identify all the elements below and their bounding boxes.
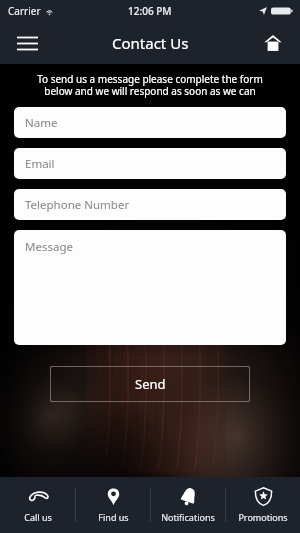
staticText: Notifications [161, 511, 215, 523]
staticText: Call us [24, 511, 52, 523]
staticText: Carrier [8, 4, 41, 18]
staticText: Find us [98, 511, 129, 523]
staticText: Telephone Number [25, 197, 130, 213]
staticText: Promotions [238, 511, 288, 523]
staticText: Message [25, 239, 73, 255]
button[interactable]: Telephone Number [14, 189, 286, 220]
staticText: Name [25, 115, 58, 131]
button[interactable]: Find us [76, 477, 150, 533]
button[interactable]: Home [256, 26, 290, 60]
button[interactable]: Message [14, 230, 286, 345]
button[interactable]: Promotions [226, 477, 300, 533]
button[interactable]: Notifications [151, 477, 225, 533]
staticText: Email [25, 156, 55, 172]
button[interactable]: Email [14, 148, 286, 179]
button[interactable]: Call us [0, 477, 75, 533]
staticText: Send [135, 375, 166, 393]
button[interactable]: Name [14, 107, 286, 138]
staticText: 12:06 PM [128, 4, 172, 18]
button[interactable]: Send [50, 366, 250, 402]
staticText: To send us a message please complete the… [8, 72, 292, 98]
staticText: Contact Us [112, 33, 189, 53]
button[interactable]: Menu [10, 26, 44, 60]
